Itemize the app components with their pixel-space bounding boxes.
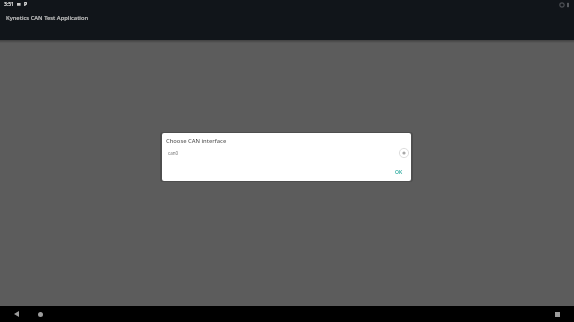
button[interactable]: can0 (162, 146, 411, 160)
staticText: can0 (168, 150, 179, 156)
button[interactable]: Back (8, 306, 25, 322)
button[interactable]: OK (387, 166, 411, 181)
staticText: Kynetics CAN Test Application (6, 14, 89, 22)
staticText: P (24, 1, 28, 8)
button[interactable]: Home (32, 306, 49, 322)
staticText: 3:51 (4, 1, 14, 8)
staticText: Choose CAN interface (166, 137, 227, 145)
button[interactable]: Recent apps (549, 306, 566, 322)
staticText: OK (395, 169, 403, 176)
